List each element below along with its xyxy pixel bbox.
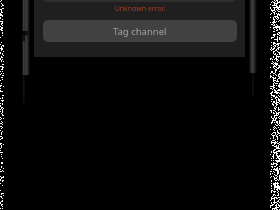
button[interactable]: Tag channel (43, 20, 237, 42)
staticText: Tag channel (113, 25, 167, 38)
other: decorative noise (0, 0, 280, 210)
staticText: Unknown error. (43, 4, 237, 14)
